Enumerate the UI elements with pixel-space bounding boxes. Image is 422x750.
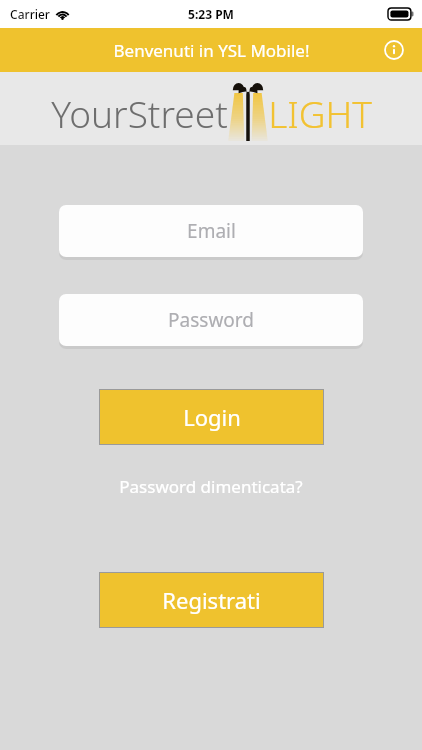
staticText: LIGHT [268, 88, 372, 138]
staticText: YourStreet [51, 88, 228, 138]
staticText: Registrati [162, 585, 261, 615]
staticText: Email [187, 218, 236, 244]
staticText: Login [183, 402, 241, 432]
staticText: Password [168, 307, 254, 333]
button[interactable]: Password dimenticata? [107, 471, 315, 502]
button[interactable]: Login [99, 389, 324, 445]
staticText: Benvenuti in YSL Mobile! [113, 39, 310, 62]
button[interactable]: Password [59, 294, 363, 346]
staticText: Password dimenticata? [119, 475, 303, 498]
button[interactable]: Registrati [99, 572, 324, 628]
staticText: Carrier [10, 6, 50, 22]
staticText: 5:23 PM [188, 6, 234, 22]
button[interactable]: Email [59, 205, 363, 257]
button[interactable]: Informazioni [374, 30, 414, 70]
